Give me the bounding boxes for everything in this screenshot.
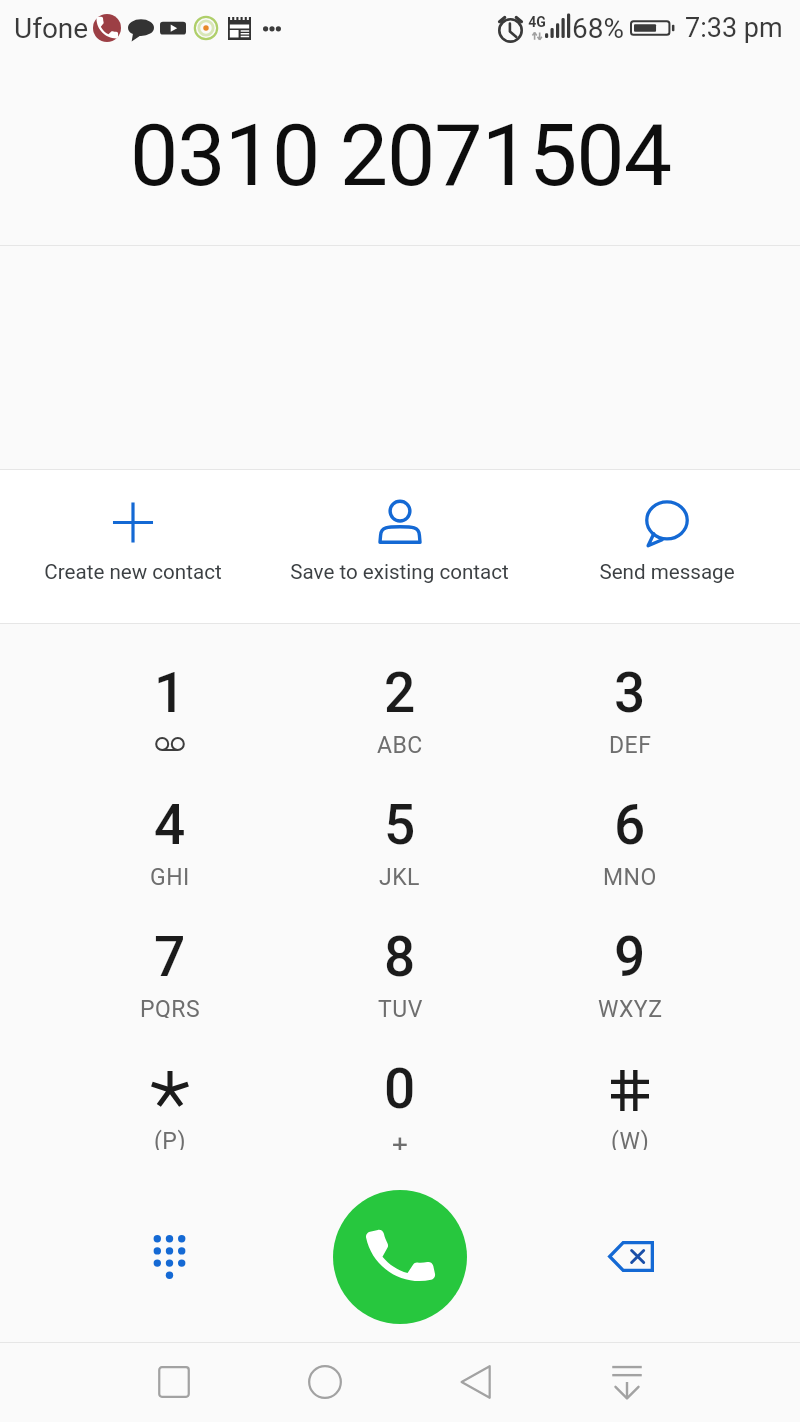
button[interactable]: 4 <box>55 773 285 905</box>
staticText: 4G <box>526 14 548 30</box>
staticText: MNO <box>603 864 657 886</box>
staticText: GHI <box>150 864 190 886</box>
staticText: 0310 2071504 <box>130 105 671 206</box>
button[interactable]: Back <box>400 1343 551 1422</box>
staticText: 3 <box>614 661 646 713</box>
button[interactable]: Backspace <box>533 1169 800 1342</box>
staticText: (W) <box>611 1128 650 1150</box>
staticText: DEF <box>609 732 652 754</box>
staticText: WXYZ <box>598 996 663 1018</box>
staticText: 2 <box>384 661 416 713</box>
staticText: (P) <box>154 1128 186 1150</box>
staticText: Send message <box>599 560 735 584</box>
button[interactable]: Hide keyboard <box>551 1343 702 1422</box>
staticText: 4 <box>154 793 186 845</box>
button[interactable]: 2 <box>285 641 515 773</box>
button[interactable]: 3 <box>515 641 745 773</box>
button[interactable]: 0 <box>285 1037 515 1169</box>
staticText: JKL <box>379 864 421 886</box>
staticText: ABC <box>377 732 423 754</box>
staticText: 8 <box>384 925 416 977</box>
staticText: 0 <box>384 1057 416 1109</box>
staticText: 68% <box>572 12 624 45</box>
button[interactable]: 6 <box>515 773 745 905</box>
button[interactable]: Show dialpad <box>0 1169 266 1342</box>
button[interactable]: 5 <box>285 773 515 905</box>
button[interactable]: Recents <box>98 1343 249 1422</box>
staticText: Ufone <box>14 12 89 45</box>
button[interactable]: (P) <box>55 1037 285 1169</box>
button[interactable]: 8 <box>285 905 515 1037</box>
button[interactable]: 1 <box>55 641 285 773</box>
staticText: + <box>392 1128 409 1150</box>
button[interactable]: Home <box>249 1343 400 1422</box>
button[interactable]: Save to existing contact <box>266 470 533 623</box>
staticText: Save to existing contact <box>290 560 509 584</box>
staticText: TUV <box>378 996 423 1018</box>
button[interactable]: Create new contact <box>0 470 266 623</box>
staticText: 5 <box>384 793 416 845</box>
button[interactable]: (W) <box>515 1037 745 1169</box>
staticText: Create new contact <box>44 560 222 584</box>
staticText: 6 <box>614 793 646 845</box>
button[interactable]: Call <box>333 1190 467 1324</box>
staticText: 7 <box>154 925 186 977</box>
staticText: 1 <box>154 661 186 713</box>
staticText: PQRS <box>140 996 201 1018</box>
button[interactable]: 9 <box>515 905 745 1037</box>
button[interactable]: 7 <box>55 905 285 1037</box>
staticText: 9 <box>614 925 646 977</box>
button[interactable]: Send message <box>533 470 800 623</box>
staticText: 7:33 pm <box>685 12 783 44</box>
